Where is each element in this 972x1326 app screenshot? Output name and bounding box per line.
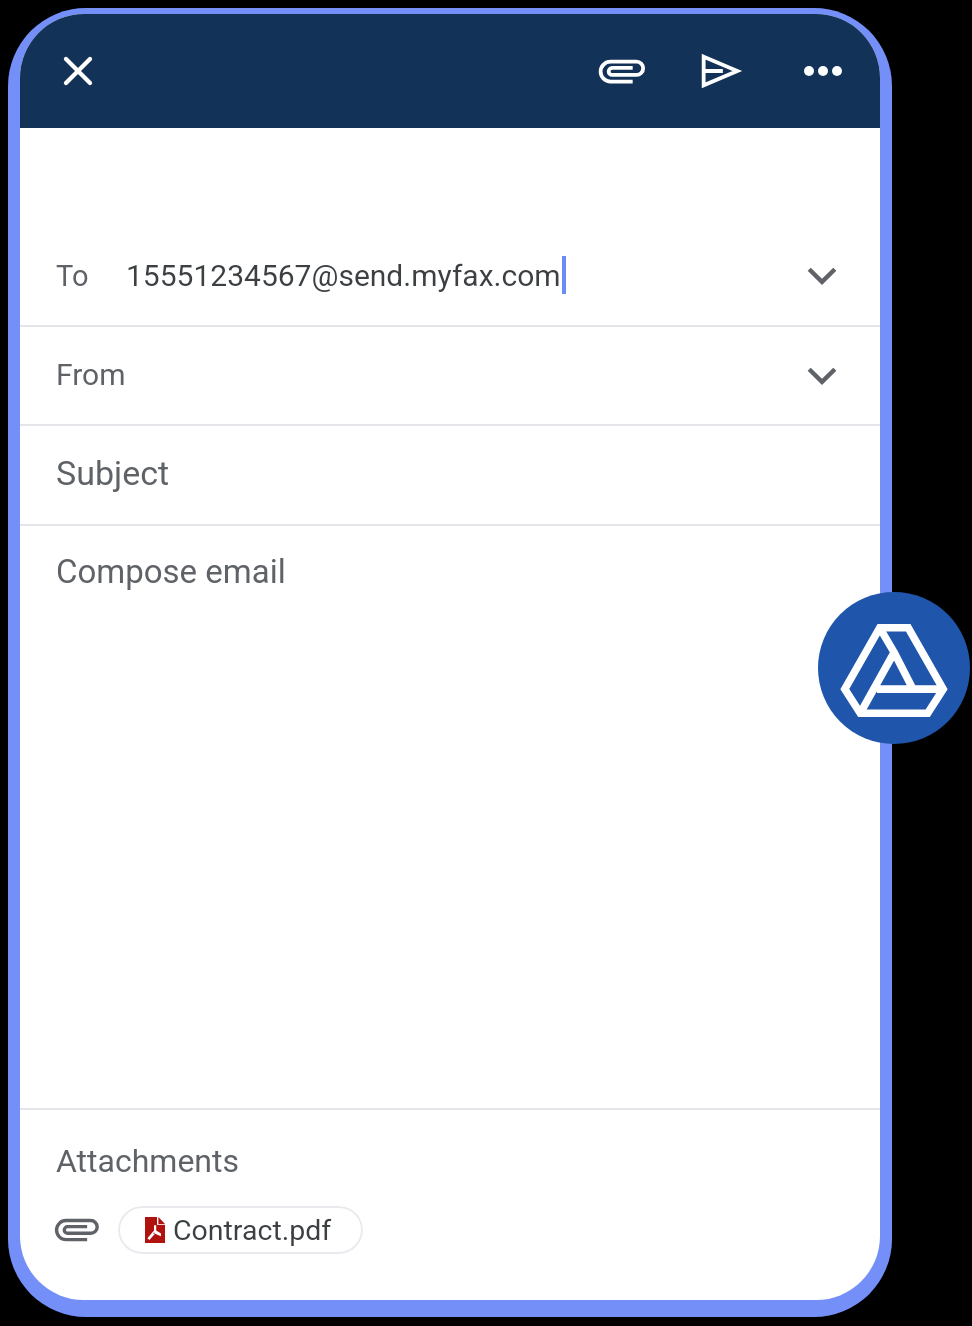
staticText: Contract.pdf	[173, 1214, 332, 1247]
button[interactable]: Google Drive	[818, 592, 970, 744]
staticText: Subject	[56, 453, 170, 493]
button[interactable]: Contract.pdf	[118, 1206, 363, 1254]
button[interactable]: From	[20, 327, 880, 426]
staticText: Compose email	[56, 552, 286, 591]
staticText: 15551234567@send.myfax.com	[126, 258, 561, 293]
staticText: To	[56, 259, 89, 293]
staticText: Attachments	[56, 1142, 240, 1180]
staticText: From	[56, 357, 126, 392]
button[interactable]: Close	[42, 35, 114, 107]
button[interactable]: Compose email	[20, 526, 880, 1108]
button[interactable]: Attach file	[585, 35, 657, 107]
button[interactable]: To	[20, 128, 880, 327]
button[interactable]: Subject	[20, 426, 880, 526]
button[interactable]: Send	[684, 35, 756, 107]
button[interactable]: More options	[787, 35, 859, 107]
